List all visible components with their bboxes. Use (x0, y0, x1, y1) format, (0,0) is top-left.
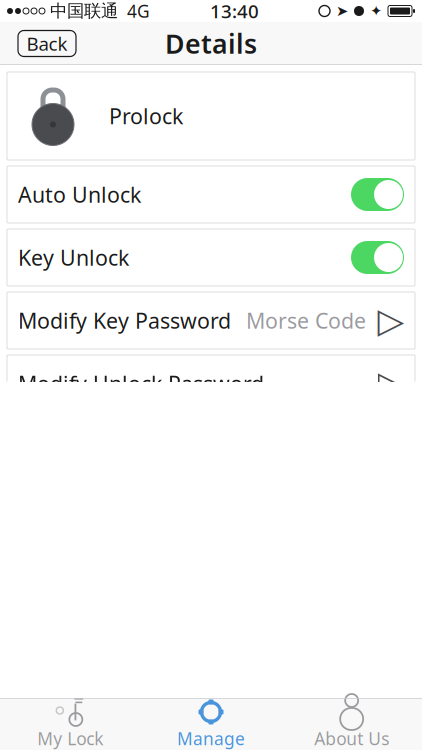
staticText: Modify Key Password (18, 306, 231, 335)
staticText: Prolock (109, 102, 183, 130)
staticText: Manage (177, 727, 245, 750)
staticText: Details (165, 26, 257, 61)
staticText: Key Unlock (18, 243, 129, 272)
button[interactable]: About Us (281, 698, 422, 750)
staticText: 中国联通 (50, 0, 118, 22)
button[interactable]: Toggle (351, 241, 404, 274)
staticText: Morse Code (246, 306, 366, 335)
button[interactable]: Back (18, 30, 76, 56)
staticText: My Lock (37, 727, 103, 750)
staticText: Auto Unlock (18, 180, 141, 209)
staticText: ▷ (377, 364, 404, 403)
button[interactable]: Toggle (351, 178, 404, 211)
staticText: 4G (127, 0, 150, 22)
staticText: 13:40 (210, 0, 259, 23)
staticText: About Us (314, 727, 389, 750)
staticText: Modify Unlock Password (18, 369, 264, 398)
button[interactable]: My Lock (0, 698, 141, 750)
staticText: ➤ (336, 3, 348, 19)
button[interactable]: Modify Unlock Password (0, 355, 422, 412)
button[interactable]: Manage (141, 698, 281, 750)
button[interactable]: Modify Key Password (0, 292, 422, 349)
staticText: Back (26, 31, 67, 56)
staticText: ✦ (370, 3, 382, 19)
staticText: ▷ (377, 301, 404, 340)
